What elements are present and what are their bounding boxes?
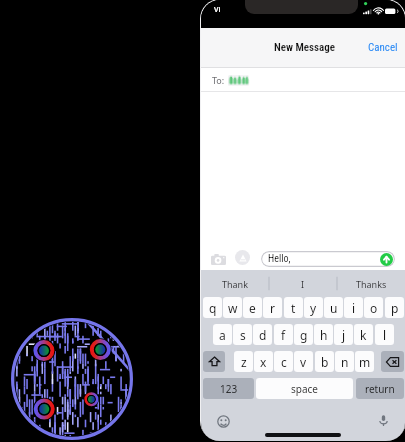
staticText: t [291,300,296,316]
staticText: g [300,327,308,343]
staticText: q [209,300,217,316]
button[interactable]: o [364,297,383,318]
staticText: r [270,300,275,316]
button[interactable]: Emoji [217,415,230,428]
button[interactable]: g [294,324,313,345]
staticText: return [365,382,395,396]
button[interactable]: p [385,297,404,318]
button[interactable]: r [263,297,282,318]
staticText: i [352,300,356,316]
staticText: u [330,300,338,316]
staticText: v [300,354,307,370]
staticText: o [370,300,378,316]
button[interactable]: Backspace [381,351,404,372]
button[interactable]: Camera [210,251,227,268]
staticText: New Message [274,41,336,54]
button[interactable]: App Store [235,250,250,265]
button[interactable]: 123 [203,378,254,399]
button[interactable]: k [354,324,373,345]
staticText: h [320,327,328,343]
button[interactable]: h [314,324,333,345]
staticText: d [259,327,267,343]
staticText: Thanks [356,278,387,290]
staticText: k [360,327,367,343]
staticText: 123 [220,382,238,396]
button[interactable]: s [233,324,252,345]
staticText: b [321,354,329,370]
button[interactable]: t [284,297,303,318]
staticText: a [219,327,226,343]
button[interactable]: v [294,351,313,372]
button[interactable]: Cancel [366,37,400,58]
button[interactable]: return [356,378,404,399]
button[interactable]: f [274,324,293,345]
button[interactable]: a [213,324,232,345]
button[interactable]: Thanks [337,270,405,297]
staticText: z [241,354,247,370]
button[interactable]: l [375,324,394,345]
staticText: c [281,354,287,370]
button[interactable]: e [243,297,262,318]
button[interactable]: u [324,297,343,318]
button[interactable]: q [203,297,222,318]
staticText: n [341,354,349,370]
button[interactable]: Send [380,253,393,266]
staticText: To: [212,74,225,86]
button[interactable]: z [234,351,253,372]
button[interactable]: x [254,351,273,372]
button[interactable]: b [315,351,334,372]
staticText: Cancel [368,41,398,54]
button[interactable]: Dictation [377,414,390,427]
button[interactable]: m [355,351,374,372]
staticText: Thank [222,278,248,290]
button[interactable]: w [223,297,242,318]
staticText: s [240,327,246,343]
staticText: x [260,354,267,370]
button[interactable]: y [304,297,323,318]
button[interactable]: j [334,324,353,345]
staticText: Vi [214,5,221,15]
staticText: Hello, [268,253,291,265]
button[interactable]: Shift [203,351,225,372]
button[interactable]: Hello, [261,251,395,267]
button[interactable]: d [253,324,272,345]
button[interactable]: c [274,351,293,372]
staticText: e [249,300,256,316]
staticText: I [301,278,305,290]
staticText: m [359,354,371,370]
button[interactable]: n [335,351,354,372]
staticText: f [281,327,286,343]
button[interactable]: i [344,297,363,318]
staticText: y [310,300,317,316]
button[interactable]: Thank [201,270,269,297]
button[interactable]: space [256,378,353,399]
staticText: w [228,300,238,316]
staticText: space [291,382,318,396]
staticText: l [383,327,387,343]
button[interactable]: I [269,270,337,297]
staticText: j [342,327,346,343]
staticText: p [391,300,399,316]
